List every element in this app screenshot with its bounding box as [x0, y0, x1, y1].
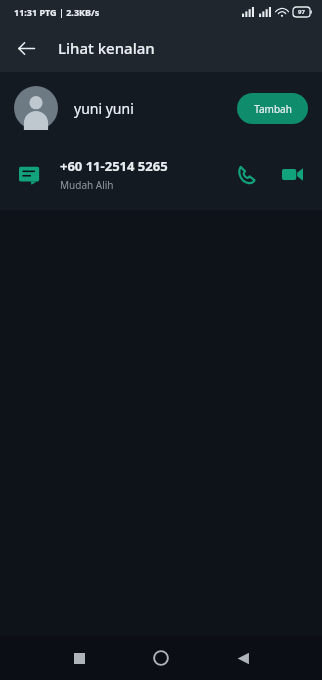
staticText: Tambah [254, 102, 292, 116]
staticText: yuni yuni [74, 99, 237, 118]
staticText: Mudah Alih [60, 178, 114, 192]
button[interactable]: Home [144, 641, 178, 675]
staticText: Lihat kenalan [58, 38, 155, 58]
button[interactable]: Back [226, 641, 260, 675]
button[interactable]: Video call [272, 154, 312, 194]
staticText: 97 [298, 8, 305, 16]
button[interactable]: Recent apps [62, 641, 96, 675]
button[interactable]: Call [226, 154, 266, 194]
button[interactable]: +60 11-2514 5265 [0, 144, 322, 204]
button[interactable]: Tambah [237, 93, 308, 124]
button[interactable]: Back [6, 28, 46, 68]
staticText: 11:31 PTG | 2.3KB/s [14, 6, 100, 18]
staticText: +60 11-2514 5265 [60, 157, 168, 175]
